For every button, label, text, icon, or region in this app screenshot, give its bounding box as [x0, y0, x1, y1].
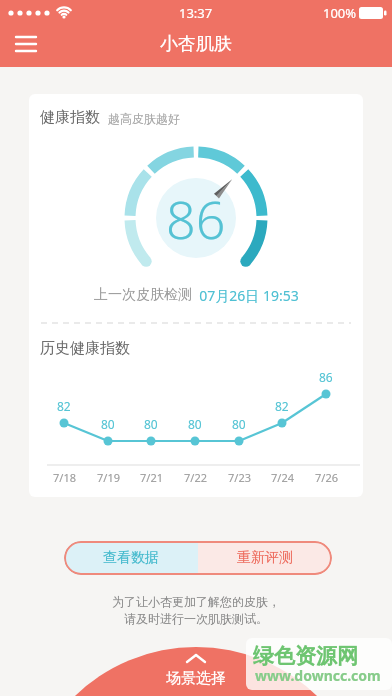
button[interactable]: 场景选择 [126, 652, 266, 696]
staticText: 80 [101, 416, 115, 432]
staticText: 82 [57, 398, 71, 414]
staticText: 历史健康指数 [40, 339, 130, 358]
staticText: 100% [323, 4, 357, 22]
staticText: 7/23 [228, 470, 251, 485]
staticText: 13:37 [179, 4, 213, 22]
staticText: 07月26日 19:53 [192, 286, 299, 305]
staticText: 7/26 [315, 470, 338, 485]
button[interactable] [8, 33, 48, 61]
staticText: 越高皮肤越好 [108, 111, 180, 126]
staticText: 7/19 [97, 470, 120, 485]
staticText: 健康指数 [40, 108, 100, 127]
staticText: 上一次皮肤检测 [94, 286, 192, 304]
staticText: 82 [275, 398, 289, 414]
staticText: 7/24 [271, 470, 294, 485]
staticText: 80 [144, 416, 158, 432]
staticText: 场景选择 [166, 669, 226, 688]
staticText: 7/21 [140, 470, 163, 485]
staticText: www.downcc.com [255, 666, 381, 685]
staticText: 80 [232, 416, 246, 432]
staticText: 查看数据 [103, 549, 159, 567]
button[interactable]: 重新评测 [198, 541, 332, 575]
staticText: 7/18 [53, 470, 76, 485]
staticText: 86 [166, 183, 226, 254]
button[interactable]: 查看数据 [64, 541, 198, 575]
staticText: 重新评测 [237, 549, 293, 567]
staticText: 7/22 [184, 470, 207, 485]
staticText: 小杏肌肤 [160, 33, 232, 56]
staticText: 80 [188, 416, 202, 432]
staticText: 86 [319, 369, 333, 385]
staticText: 为了让小杏更加了解您的皮肤， 请及时进行一次肌肤测试。 [112, 594, 280, 626]
staticText: 绿色资源网 [253, 643, 358, 669]
